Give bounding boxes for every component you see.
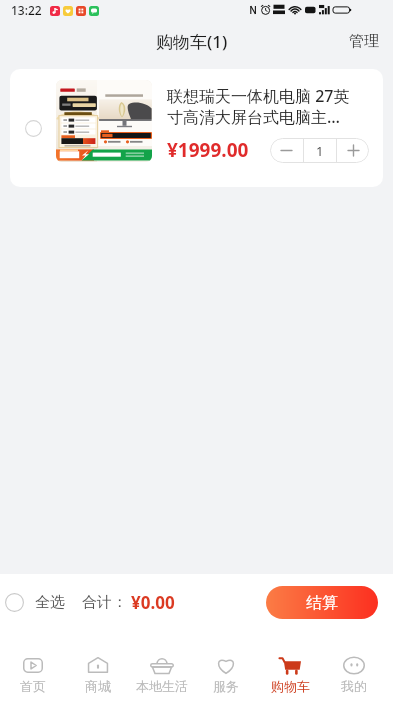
staticText: 结算 xyxy=(306,593,338,613)
button[interactable]: 服务 xyxy=(194,631,258,710)
staticText: 1 xyxy=(316,142,324,160)
button[interactable]: 我的 xyxy=(322,631,386,710)
staticText: ¥0.00 xyxy=(131,591,175,614)
staticText: 本地生活 xyxy=(136,678,188,694)
button[interactable]: 商城 xyxy=(65,631,130,710)
staticText: 合计： xyxy=(82,593,127,612)
button[interactable]: 全选 xyxy=(5,584,65,621)
staticText: 购物车(1) xyxy=(156,30,228,53)
staticText: 联想瑞天一体机电脑 27英寸高清大屏台式电脑主… xyxy=(167,85,359,128)
staticText: 13:22 xyxy=(11,2,42,18)
staticText: 购物车 xyxy=(271,678,310,694)
button[interactable]: Select item xyxy=(10,69,56,187)
button[interactable]: 首页 xyxy=(0,631,65,710)
staticText: 管理 xyxy=(349,32,379,51)
button[interactable]: 管理 xyxy=(335,22,393,61)
staticText: 商城 xyxy=(85,678,111,694)
button[interactable]: Select item xyxy=(10,69,383,187)
button[interactable]: Increase quantity xyxy=(337,138,369,163)
staticText: 服务 xyxy=(213,678,239,694)
staticText: 首页 xyxy=(20,678,46,694)
staticText: 我的 xyxy=(341,678,367,694)
staticText: 全选 xyxy=(35,593,65,612)
staticText: ¥1999.00 xyxy=(167,137,249,163)
button[interactable]: 结算 xyxy=(266,586,378,619)
button[interactable]: 本地生活 xyxy=(130,631,194,710)
button[interactable]: 购物车 xyxy=(258,631,322,710)
button[interactable]: Decrease quantity xyxy=(270,138,303,163)
